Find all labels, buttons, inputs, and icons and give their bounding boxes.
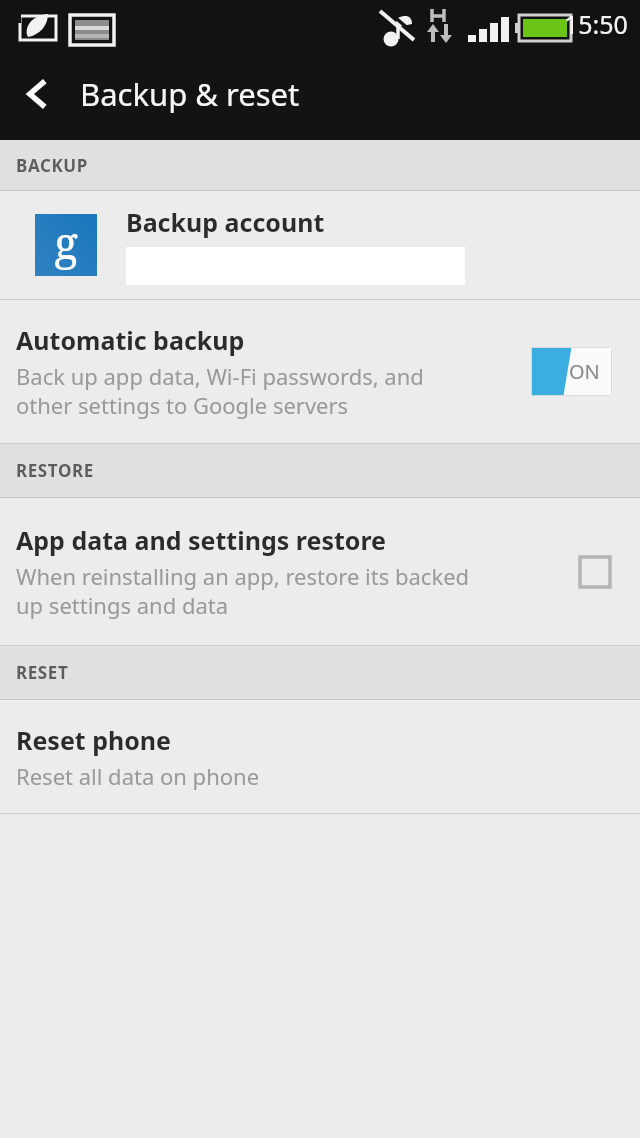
button[interactable]: App data and settings restore checkbox bbox=[572, 549, 618, 595]
button[interactable]: Automatic backup on bbox=[531, 347, 612, 396]
button[interactable]: Reset phone bbox=[0, 700, 640, 813]
staticText: Automatic backup bbox=[16, 323, 245, 357]
button[interactable]: g bbox=[0, 191, 640, 299]
staticText: When reinstalling an app, restore its ba… bbox=[16, 561, 470, 620]
staticText: Back up app data, Wi-Fi passwords, and o… bbox=[16, 361, 424, 420]
staticText: BACKUP bbox=[16, 154, 88, 177]
staticText: RESET bbox=[16, 661, 69, 684]
staticText: Reset phone bbox=[16, 723, 172, 757]
staticText: g bbox=[54, 212, 78, 272]
staticText: Backup & reset bbox=[80, 73, 300, 115]
staticText: 15:50 bbox=[564, 7, 628, 41]
staticText: App data and settings restore bbox=[16, 523, 387, 557]
staticText: ON bbox=[569, 358, 600, 385]
button[interactable]: App data and settings restore bbox=[0, 498, 640, 645]
staticText: Reset all data on phone bbox=[16, 761, 260, 791]
staticText: Backup account bbox=[126, 205, 325, 239]
staticText: RESTORE bbox=[16, 459, 94, 482]
button[interactable]: Back bbox=[0, 56, 76, 132]
button[interactable]: Automatic backup bbox=[0, 300, 640, 443]
